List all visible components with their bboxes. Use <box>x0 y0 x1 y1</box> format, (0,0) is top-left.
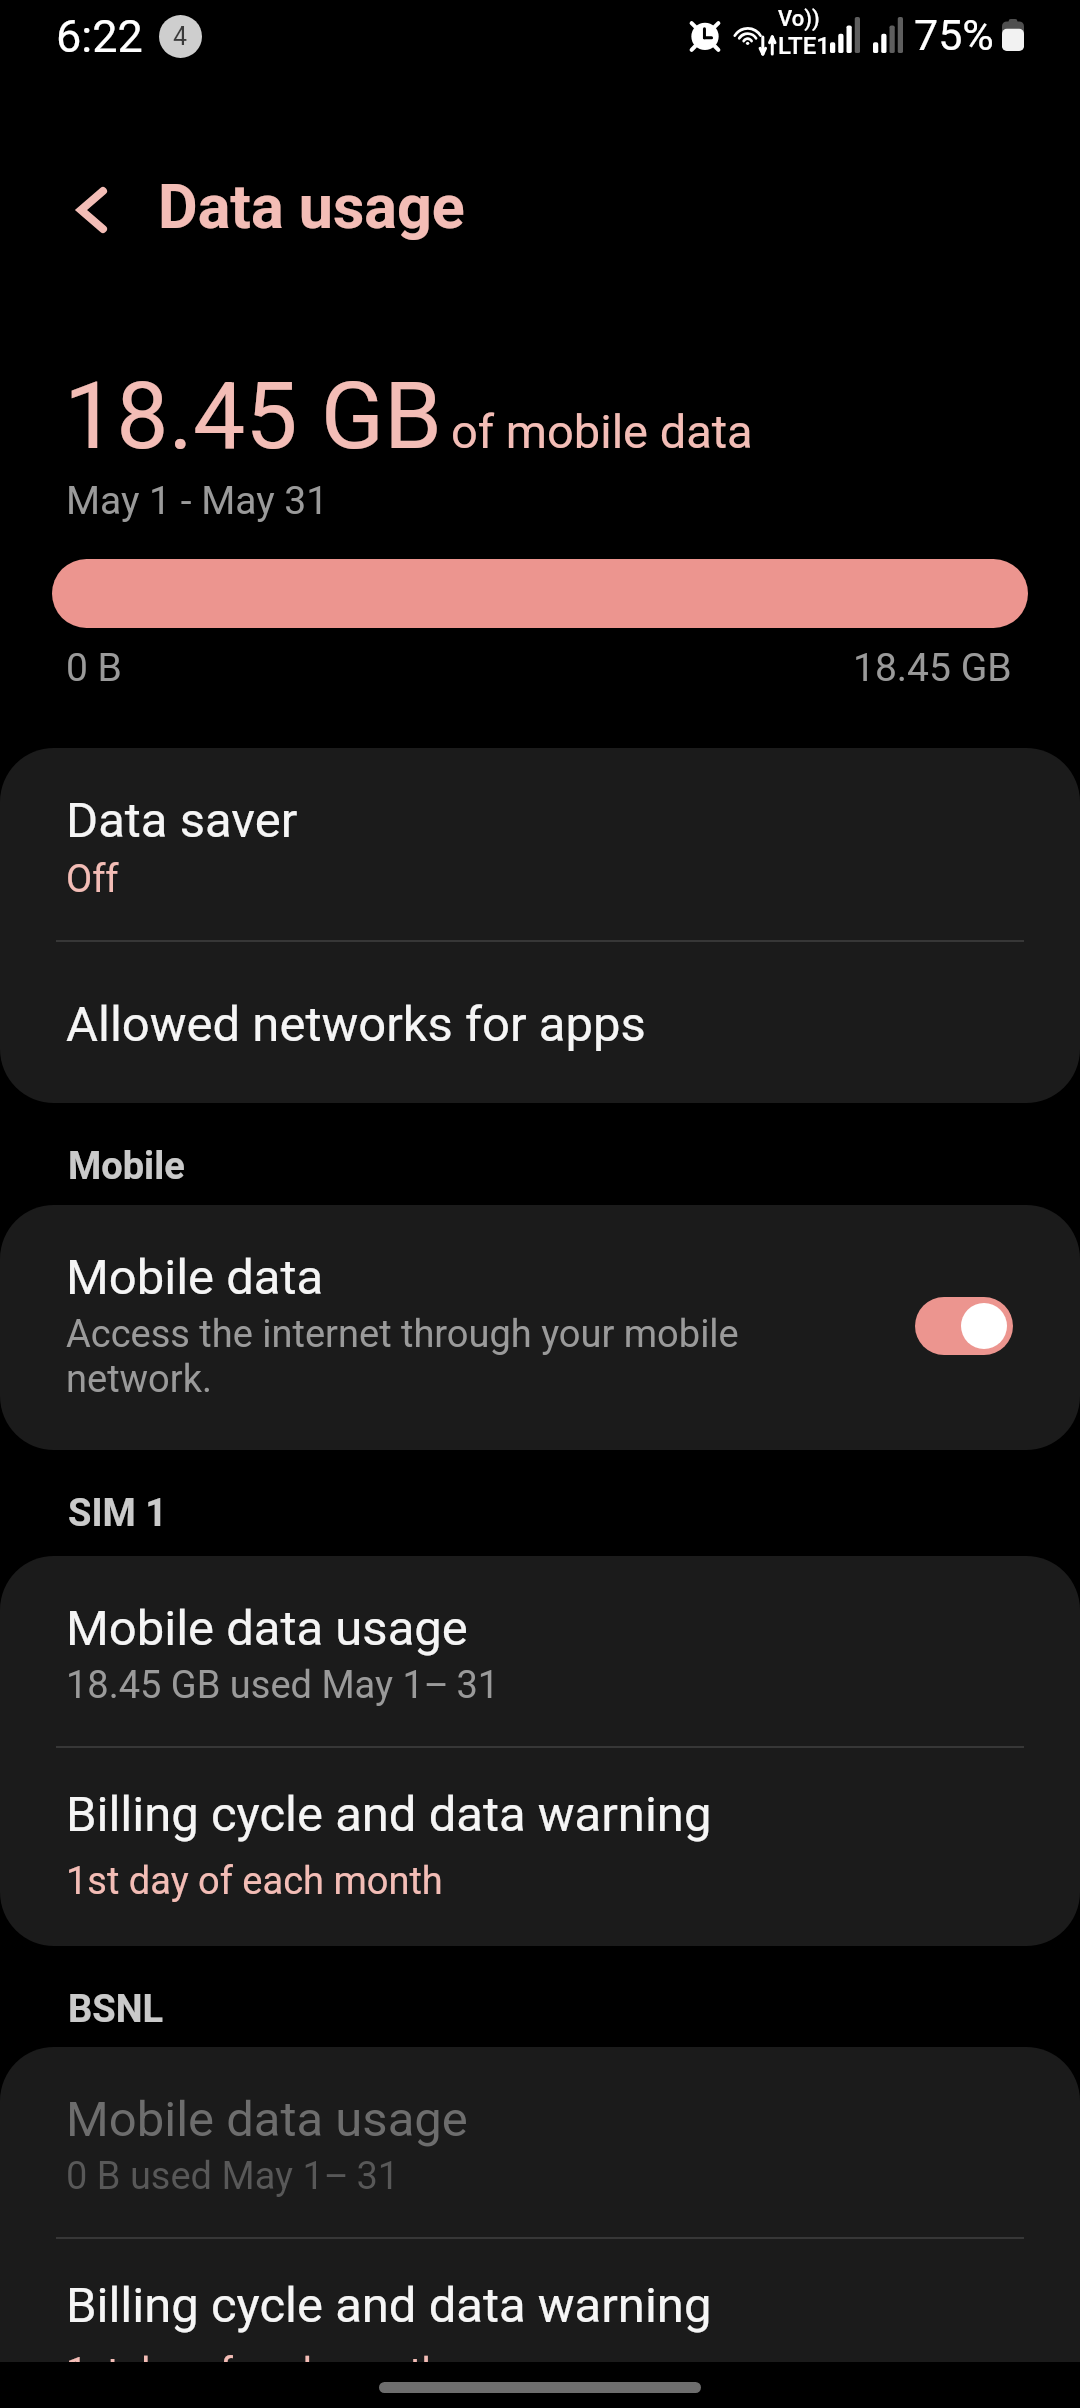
staticText: 18.45 GB <box>64 362 442 471</box>
staticText: Vo)) <box>778 6 820 32</box>
staticText: Access the internet through your mobile … <box>66 1312 875 1402</box>
staticText: SIM 1 <box>68 1491 168 1536</box>
staticText: Data usage <box>158 171 465 242</box>
staticText: of mobile data <box>451 404 753 459</box>
staticText: 75% <box>914 10 994 60</box>
staticText: Mobile <box>68 1144 185 1189</box>
staticText: 0 B <box>66 645 122 691</box>
button[interactable]: Data saver <box>0 748 1080 940</box>
staticText: Billing cycle and data warning <box>66 1786 712 1843</box>
button[interactable]: Allowed networks for apps <box>0 942 1080 1103</box>
button[interactable]: Billing cycle and data warning <box>0 1748 1080 1946</box>
button[interactable]: Mobile data <box>0 1205 1080 1450</box>
staticText: 18.45 GB <box>853 645 1012 691</box>
button[interactable]: Mobile data usage <box>0 1556 1080 1746</box>
staticText: LTE1 <box>778 32 830 60</box>
staticText: Mobile data <box>66 1249 324 1306</box>
staticText: Mobile data usage <box>66 1600 468 1657</box>
staticText: 1st day of each month <box>66 2350 443 2362</box>
staticText: Allowed networks for apps <box>66 996 646 1053</box>
staticText: Billing cycle and data warning <box>66 2277 712 2334</box>
staticText: 4 <box>173 22 188 51</box>
button[interactable]: Billing cycle and data warning <box>0 2239 1080 2362</box>
staticText: BSNL <box>68 1987 164 2032</box>
staticText: 0 B used May 1– 31 <box>66 2154 400 2199</box>
button[interactable]: Back <box>46 164 138 256</box>
button[interactable]: Mobile data usage <box>0 2047 1080 2237</box>
staticText: 1st day of each month <box>66 1859 443 1904</box>
staticText: Data saver <box>66 792 298 849</box>
button[interactable]: Mobile data on <box>915 1297 1013 1355</box>
staticText: 18.45 GB used May 1– 31 <box>66 1663 500 1708</box>
staticText: Off <box>66 857 119 902</box>
staticText: May 1 - May 31 <box>66 478 329 524</box>
staticText: 6:22 <box>56 10 143 63</box>
staticText: Mobile data usage <box>66 2091 468 2148</box>
